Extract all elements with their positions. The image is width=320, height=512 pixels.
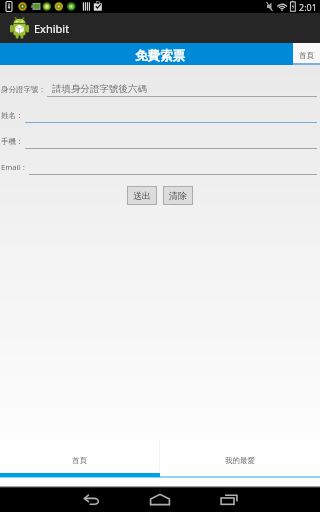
staticText: 免費索票 bbox=[135, 48, 185, 64]
button[interactable]: Recent apps bbox=[214, 486, 244, 512]
staticText: 身分證字號： bbox=[1, 85, 46, 94]
button[interactable]: 我的最愛 bbox=[160, 441, 320, 473]
staticText: 我的最愛 bbox=[225, 456, 255, 465]
button[interactable]: 清除 bbox=[164, 187, 192, 204]
staticText: Email： bbox=[1, 162, 28, 172]
staticText: 送出 bbox=[133, 190, 151, 201]
staticText: 首頁 bbox=[299, 51, 314, 60]
button[interactable]: 送出 bbox=[128, 187, 156, 204]
button[interactable]: Home bbox=[145, 486, 175, 512]
button[interactable]: 首頁 bbox=[0, 441, 159, 473]
staticText: 清除 bbox=[169, 190, 187, 201]
staticText: 姓名： bbox=[1, 111, 24, 120]
staticText: 2:01 bbox=[299, 1, 317, 13]
staticText: Exhibit bbox=[34, 21, 70, 36]
staticText: 請填身分證字號後六碼 bbox=[52, 83, 147, 95]
button[interactable]: Back bbox=[76, 486, 106, 512]
staticText: 首頁 bbox=[72, 456, 87, 465]
staticText: 手機： bbox=[1, 137, 24, 146]
button[interactable]: 首頁 bbox=[293, 43, 320, 65]
